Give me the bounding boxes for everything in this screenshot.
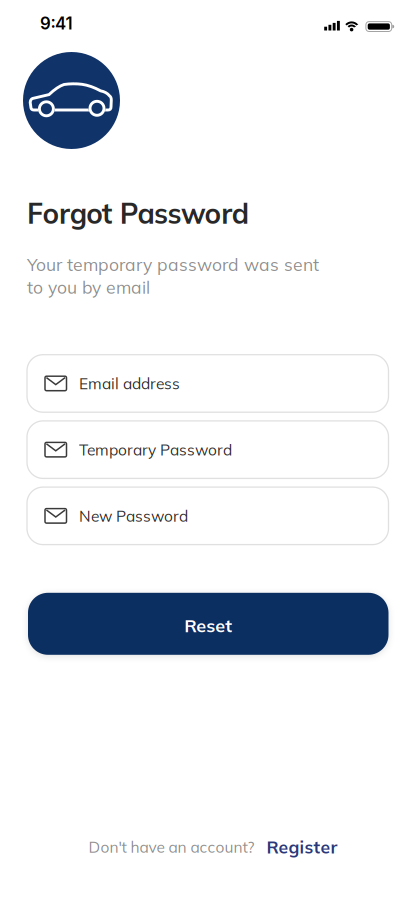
staticText: New Password [79, 506, 188, 526]
staticText: Don't have an account? [88, 837, 254, 857]
staticText: Register [266, 836, 337, 858]
button[interactable]: Temporary Password [27, 421, 388, 478]
staticText: Temporary Password [79, 440, 232, 459]
staticText: Your temporary password was sent to you … [27, 253, 319, 298]
button[interactable]: New Password [27, 487, 388, 545]
staticText: 9:41 [40, 13, 72, 33]
button[interactable]: Email address [27, 355, 388, 412]
staticText: Reset [184, 614, 232, 637]
button[interactable]: Reset [28, 593, 388, 655]
staticText: Forgot Password [27, 195, 249, 231]
staticText: Email address [79, 374, 180, 393]
button[interactable]: Register [266, 836, 337, 858]
